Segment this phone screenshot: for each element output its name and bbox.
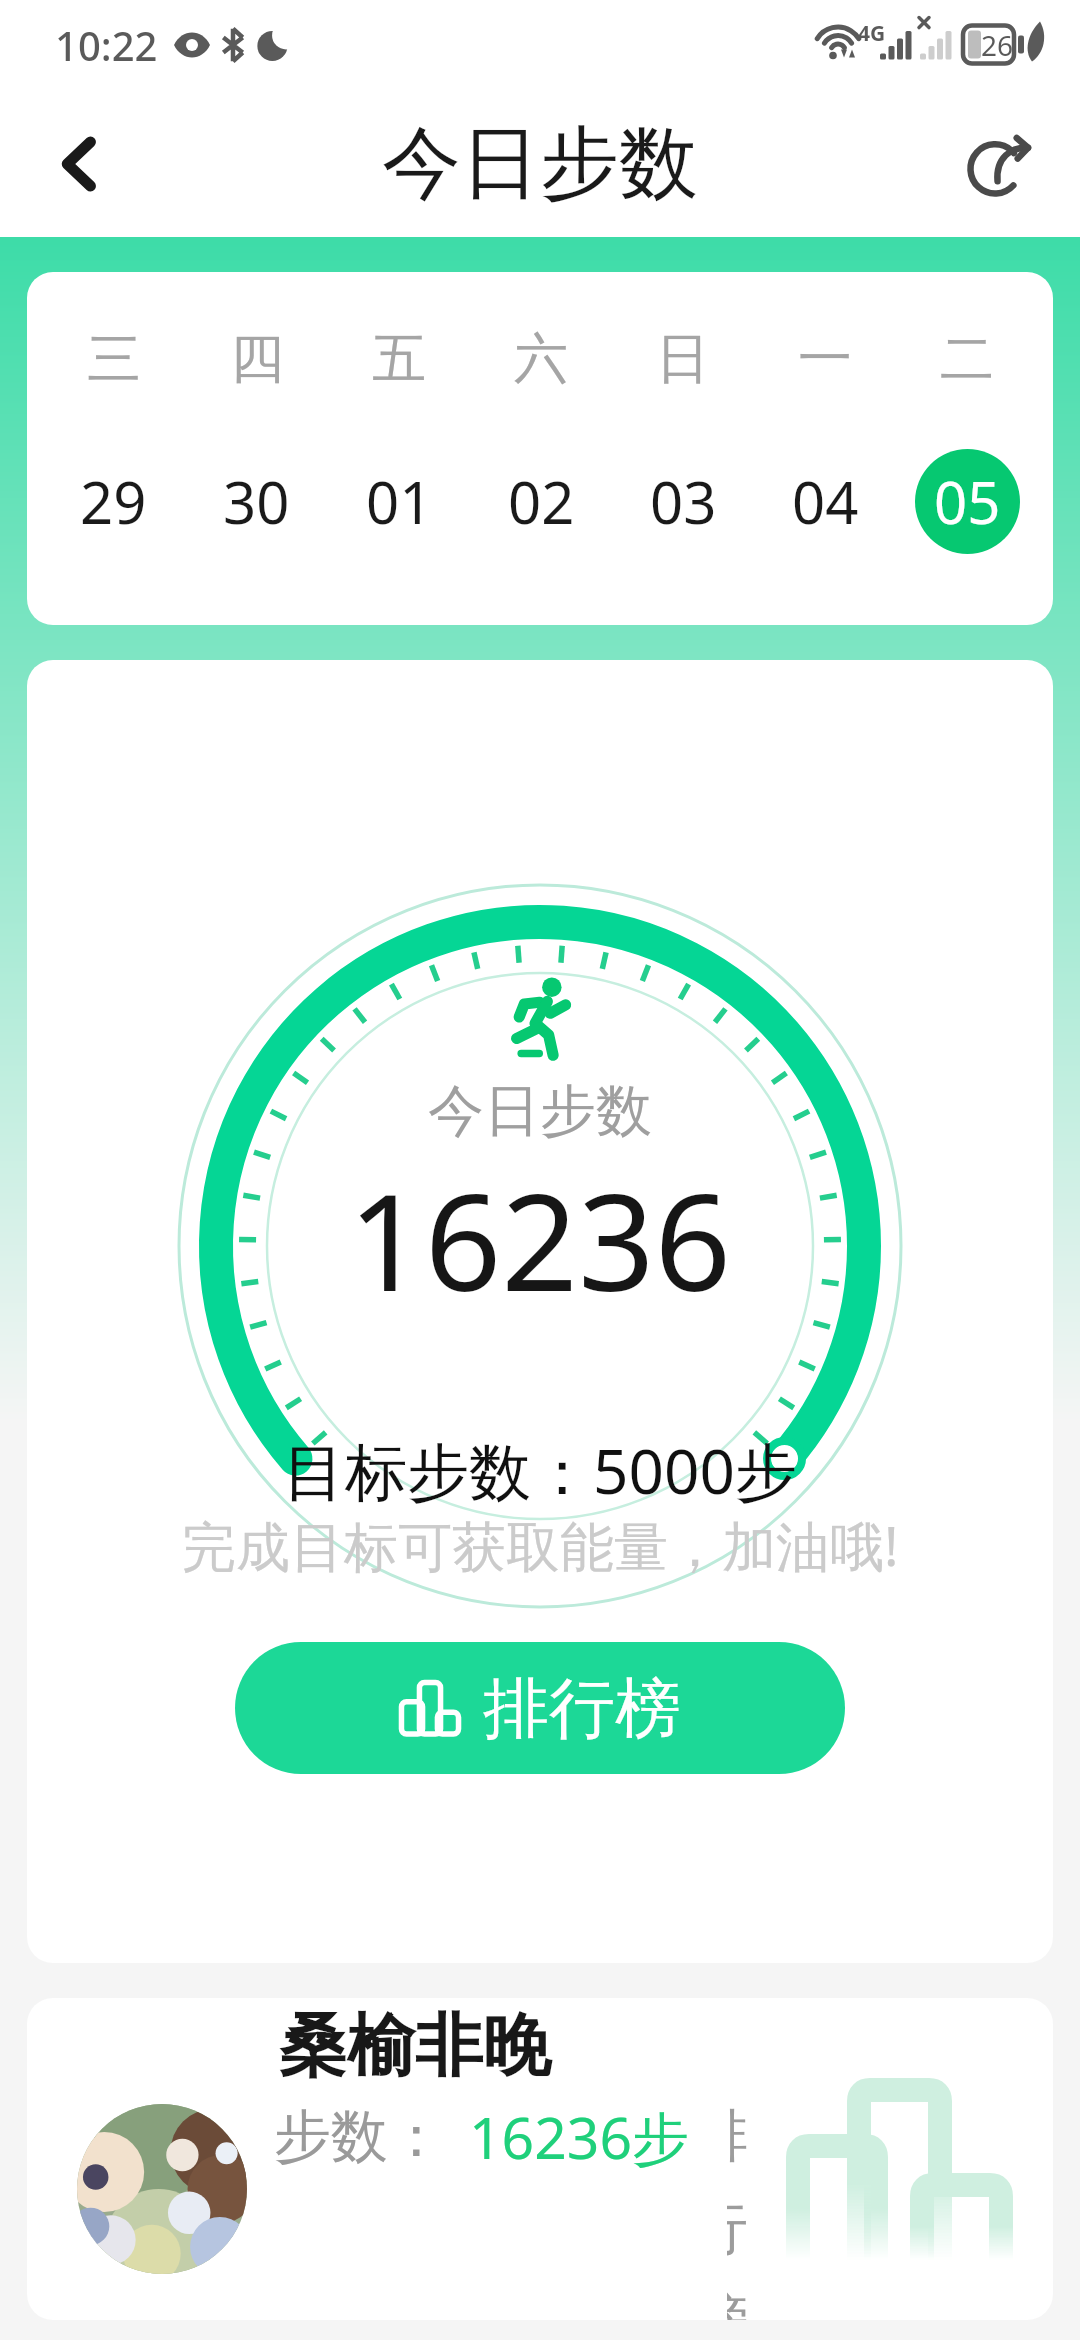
staticText: 四 (230, 325, 284, 393)
button[interactable]: 桑榆非晚 (27, 1998, 1053, 2320)
button[interactable]: Share (920, 90, 1080, 237)
staticText: 二 (940, 325, 994, 393)
staticText: 一 (798, 325, 852, 393)
button[interactable]: 04 (754, 449, 896, 554)
staticText: 04 (792, 462, 859, 541)
staticText: 02 (508, 462, 575, 541)
staticText: 目标步数：5000步 (283, 1428, 797, 1513)
staticText: 今日步数 (428, 1076, 652, 1147)
staticText: 完成目标可获取能量，加油哦! (182, 1508, 899, 1582)
button[interactable]: 01 (328, 449, 470, 554)
staticText: 05 (934, 462, 1001, 541)
button[interactable]: 05 (896, 449, 1038, 554)
staticText: 4G (858, 19, 886, 48)
staticText: 排 行 榜： (727, 2106, 751, 2320)
button[interactable]: 29 (42, 449, 185, 554)
staticText: 29 (80, 462, 147, 541)
staticText: 五 (372, 325, 426, 393)
staticText: 六 (514, 325, 568, 393)
staticText: 日 (656, 325, 710, 393)
button[interactable]: Back (0, 90, 160, 237)
staticText: 03 (650, 462, 717, 541)
button[interactable]: 30 (185, 449, 328, 554)
staticText: 桑榆非晚 (279, 2004, 551, 2090)
button[interactable]: 02 (470, 449, 612, 554)
staticText: 16236步 (469, 2098, 690, 2176)
button[interactable]: 排行榜 (235, 1642, 845, 1774)
staticText: 26 (981, 26, 1014, 64)
staticText: 三 (87, 325, 141, 393)
staticText: 排行榜 (483, 1667, 681, 1750)
staticText: 01 (366, 462, 433, 541)
staticText: 今日步数 (382, 114, 698, 214)
staticText: 30 (223, 462, 290, 541)
button[interactable]: 03 (612, 449, 754, 554)
staticText: 步数： (274, 2101, 445, 2173)
staticText: 10:22 (55, 18, 158, 72)
staticText: 16236 (348, 1148, 732, 1331)
